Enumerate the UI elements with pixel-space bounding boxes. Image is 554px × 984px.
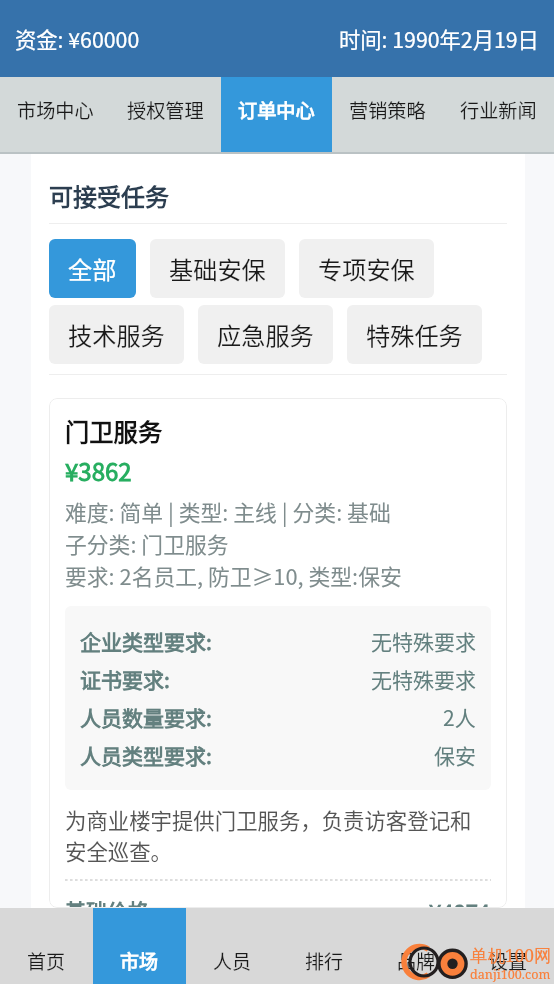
staticText: 专项安保 xyxy=(318,251,415,286)
staticText: 难度: 简单 | 类型: 主线 | 分类: 基础 xyxy=(65,496,391,528)
staticText: 2人 xyxy=(443,702,476,732)
button[interactable]: 基础安保 xyxy=(150,239,285,298)
staticText: 人员类型要求: xyxy=(80,740,212,770)
staticText: 行业新闻 xyxy=(460,96,537,124)
staticText: 子分类: 门卫服务 xyxy=(65,528,229,560)
staticText: 时间: 1990年2月19日 xyxy=(339,23,539,54)
button[interactable]: 授权管理 xyxy=(110,77,221,152)
staticText: 人员 xyxy=(213,947,252,975)
button[interactable]: 首页 xyxy=(0,908,93,984)
staticText: 保安 xyxy=(434,740,476,770)
button[interactable]: 应急服务 xyxy=(198,305,333,364)
staticText: 人员数量要求: xyxy=(80,702,212,732)
staticText: 门卫服务 xyxy=(65,413,163,448)
staticText: 证书要求: xyxy=(80,664,170,694)
staticText: 基础安保 xyxy=(169,251,266,286)
staticText: ¥4874 xyxy=(429,895,491,908)
button[interactable]: 技术服务 xyxy=(49,305,184,364)
staticText: 订单中心 xyxy=(238,96,315,124)
button[interactable]: 品牌 xyxy=(370,908,462,984)
button[interactable]: 市场 xyxy=(93,908,186,984)
staticText: 营销策略 xyxy=(349,96,426,124)
staticText: 全部 xyxy=(68,251,117,286)
staticText: 要求: 2名员工, 防卫≥10, 类型:保安 xyxy=(65,560,402,592)
staticText: 市场 xyxy=(120,947,159,975)
button[interactable]: 特殊任务 xyxy=(347,305,482,364)
button[interactable]: 门卫服务 xyxy=(49,398,507,908)
staticText: danji100.com xyxy=(470,966,551,983)
staticText: 单机100网 xyxy=(470,943,552,965)
button[interactable]: 市场中心 xyxy=(0,77,110,152)
staticText: 应急服务 xyxy=(217,317,314,352)
button[interactable]: 专项安保 xyxy=(299,239,434,298)
staticText: 排行 xyxy=(305,947,344,975)
staticText: 无特殊要求 xyxy=(371,626,476,656)
button[interactable]: 排行 xyxy=(278,908,370,984)
staticText: 设置 xyxy=(489,947,528,975)
staticText: 首页 xyxy=(27,947,66,975)
staticText: 授权管理 xyxy=(127,96,204,124)
button[interactable]: 营销策略 xyxy=(332,77,443,152)
staticText: 技术服务 xyxy=(68,317,165,352)
staticText: 品牌 xyxy=(397,947,436,975)
button[interactable]: 行业新闻 xyxy=(443,77,554,152)
staticText: 特殊任务 xyxy=(366,317,463,352)
staticText: 基础价格 xyxy=(65,895,149,908)
button[interactable]: 设置 xyxy=(462,908,554,984)
button[interactable]: 全部 xyxy=(49,239,136,298)
staticText: 资金: ¥60000 xyxy=(15,23,140,54)
button[interactable]: 订单中心 xyxy=(221,77,332,152)
staticText: ¥3862 xyxy=(65,453,132,488)
staticText: 企业类型要求: xyxy=(80,626,212,656)
staticText: 市场中心 xyxy=(17,96,94,124)
staticText: 为商业楼宇提供门卫服务，负责访客登记和安全巡查。 xyxy=(65,804,491,866)
staticText: 无特殊要求 xyxy=(371,664,476,694)
staticText: 可接受任务 xyxy=(49,178,169,213)
button[interactable]: 人员 xyxy=(186,908,278,984)
